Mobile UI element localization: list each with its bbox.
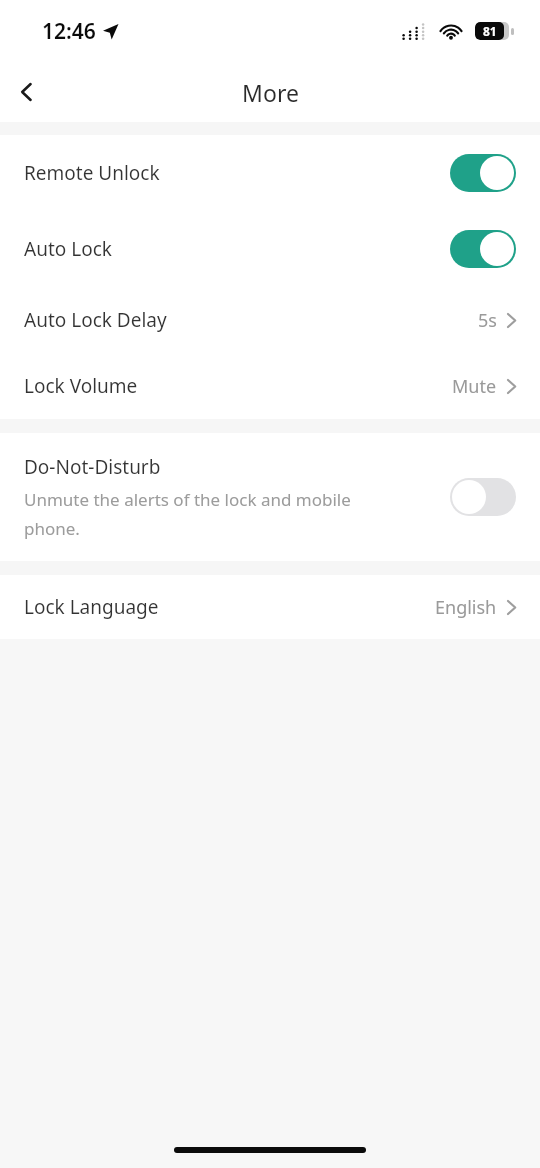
button[interactable]: Off xyxy=(450,478,516,516)
staticText: 81 xyxy=(483,23,497,39)
button[interactable]: Back xyxy=(0,65,54,119)
staticText: Lock Volume xyxy=(24,373,138,399)
staticText: Auto Lock Delay xyxy=(24,307,167,333)
button[interactable]: Lock Language xyxy=(0,575,540,639)
staticText: Unmute the alerts of the lock and mobile… xyxy=(24,488,351,540)
staticText: English xyxy=(435,595,497,620)
staticText: Do-Not-Disturb xyxy=(24,454,161,480)
button[interactable]: On xyxy=(450,230,516,268)
button[interactable]: On xyxy=(450,154,516,192)
button[interactable]: Auto Lock Delay xyxy=(0,287,540,353)
button[interactable]: Do-Not-Disturb xyxy=(0,433,540,561)
staticText: Lock Language xyxy=(24,594,159,620)
button[interactable]: Auto Lock xyxy=(0,211,540,287)
staticText: 5s xyxy=(478,308,497,333)
button[interactable]: Lock Volume xyxy=(0,353,540,419)
staticText: 12:46 xyxy=(42,17,96,46)
staticText: More xyxy=(242,77,299,108)
staticText: Mute xyxy=(452,374,497,399)
staticText: Auto Lock xyxy=(24,236,112,262)
button[interactable]: Remote Unlock xyxy=(0,135,540,211)
staticText: Remote Unlock xyxy=(24,160,160,186)
